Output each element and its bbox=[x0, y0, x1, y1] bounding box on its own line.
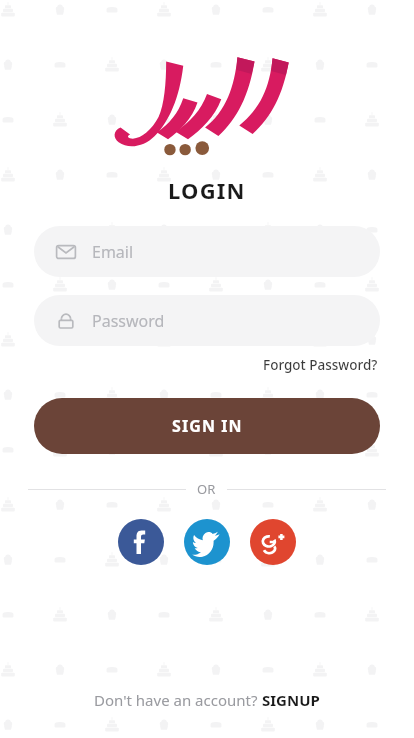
staticText: Email bbox=[92, 241, 134, 263]
staticText: Forgot Password? bbox=[263, 356, 378, 374]
staticText: LOGIN bbox=[168, 175, 246, 205]
staticText: SIGNUP bbox=[262, 690, 320, 710]
button[interactable]: Forgot Password? bbox=[261, 354, 380, 376]
button[interactable]: Don't have an account? bbox=[84, 684, 330, 716]
staticText: OR bbox=[197, 480, 216, 498]
button[interactable]: Sign in with Facebook bbox=[118, 519, 164, 565]
staticText: Don't have an account? bbox=[94, 690, 262, 710]
button[interactable]: Sign in with Twitter bbox=[184, 519, 230, 565]
button[interactable]: Sign in with Google bbox=[250, 519, 296, 565]
staticText: Password bbox=[92, 310, 165, 332]
button[interactable]: Email bbox=[34, 226, 380, 277]
button[interactable]: Password bbox=[34, 295, 380, 346]
staticText: SIGN IN bbox=[172, 415, 243, 437]
button[interactable]: SIGN IN bbox=[34, 398, 380, 454]
